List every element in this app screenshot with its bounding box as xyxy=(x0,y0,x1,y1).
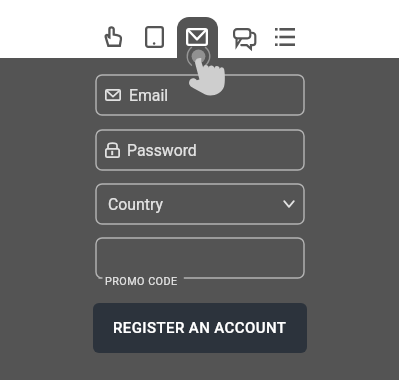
staticText: Email xyxy=(129,86,169,105)
button[interactable]: Mail xyxy=(177,17,218,58)
button[interactable]: Tablet xyxy=(135,18,173,58)
button[interactable]: REGISTER AN ACCOUNT xyxy=(93,303,307,353)
staticText: Password xyxy=(127,141,197,160)
staticText: PROMO CODE xyxy=(105,275,178,288)
button[interactable]: List xyxy=(266,18,304,58)
button[interactable]: Chat xyxy=(225,18,263,58)
button[interactable]: Country xyxy=(96,184,304,224)
button[interactable]: PROMO CODE xyxy=(96,238,304,278)
staticText: Country xyxy=(108,195,163,214)
staticText: REGISTER AN ACCOUNT xyxy=(113,319,287,337)
button[interactable]: Touch input xyxy=(94,18,132,58)
button[interactable]: Password xyxy=(96,130,304,170)
button[interactable]: Email xyxy=(96,75,304,115)
